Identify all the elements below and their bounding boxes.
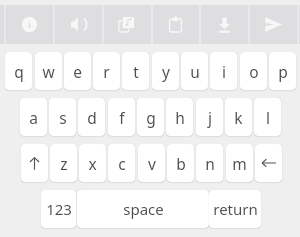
button[interactable]: w — [35, 52, 62, 90]
staticText: return — [213, 199, 258, 219]
staticText: y — [162, 61, 170, 82]
button[interactable]: l — [254, 98, 281, 136]
button[interactable]: c — [108, 144, 135, 182]
button[interactable]: u — [181, 52, 208, 90]
button[interactable]: Volume — [55, 5, 102, 44]
button[interactable]: Clipboard — [152, 5, 199, 44]
button[interactable]: Shift — [21, 144, 48, 182]
staticText: 123 — [46, 199, 72, 219]
staticText: space — [123, 199, 164, 219]
staticText: q — [14, 61, 24, 82]
button[interactable]: a — [20, 98, 47, 136]
button[interactable]: v — [138, 144, 165, 182]
button[interactable]: return — [209, 190, 261, 228]
button[interactable]: g — [137, 98, 164, 136]
staticText: m — [232, 153, 247, 174]
button[interactable]: Backspace — [255, 144, 282, 182]
staticText: u — [190, 61, 200, 82]
staticText: h — [175, 107, 185, 128]
button[interactable]: Download — [201, 5, 248, 44]
button[interactable]: h — [166, 98, 193, 136]
staticText: k — [234, 107, 243, 128]
button[interactable]: z — [50, 144, 77, 182]
button[interactable]: k — [225, 98, 252, 136]
button[interactable]: e — [64, 52, 91, 90]
staticText: o — [249, 61, 259, 82]
staticText: t — [133, 61, 139, 82]
staticText: e — [73, 61, 82, 82]
button[interactable]: f — [108, 98, 135, 136]
staticText: f — [119, 107, 125, 128]
button[interactable]: Send — [250, 5, 297, 44]
button[interactable]: space — [77, 190, 209, 228]
staticText: b — [176, 153, 186, 174]
button[interactable]: y — [152, 52, 179, 90]
button[interactable]: t — [122, 52, 149, 90]
staticText: z — [60, 153, 68, 174]
button[interactable]: n — [196, 144, 223, 182]
button[interactable]: b — [167, 144, 194, 182]
button[interactable]: m — [226, 144, 253, 182]
staticText: x — [88, 153, 97, 174]
staticText: c — [118, 153, 126, 174]
staticText: i — [222, 61, 226, 82]
button[interactable]: s — [49, 98, 76, 136]
button[interactable]: q — [5, 52, 32, 90]
staticText: j — [208, 107, 212, 128]
staticText: l — [266, 107, 270, 128]
button[interactable]: r — [93, 52, 120, 90]
button[interactable]: Music library — [103, 5, 150, 44]
staticText: d — [87, 107, 97, 128]
staticText: v — [148, 153, 156, 174]
button[interactable]: Info — [6, 5, 53, 44]
button[interactable]: x — [79, 144, 106, 182]
staticText: w — [42, 61, 55, 82]
staticText: r — [103, 61, 110, 82]
staticText: s — [59, 107, 67, 128]
button[interactable]: i — [210, 52, 237, 90]
button[interactable]: d — [78, 98, 105, 136]
button[interactable]: o — [240, 52, 267, 90]
button[interactable]: j — [196, 98, 223, 136]
button[interactable]: p — [269, 52, 296, 90]
staticText: p — [278, 61, 288, 82]
button[interactable]: Numbers — [41, 190, 76, 228]
staticText: g — [146, 107, 156, 128]
staticText: n — [205, 153, 215, 174]
staticText: a — [29, 107, 38, 128]
